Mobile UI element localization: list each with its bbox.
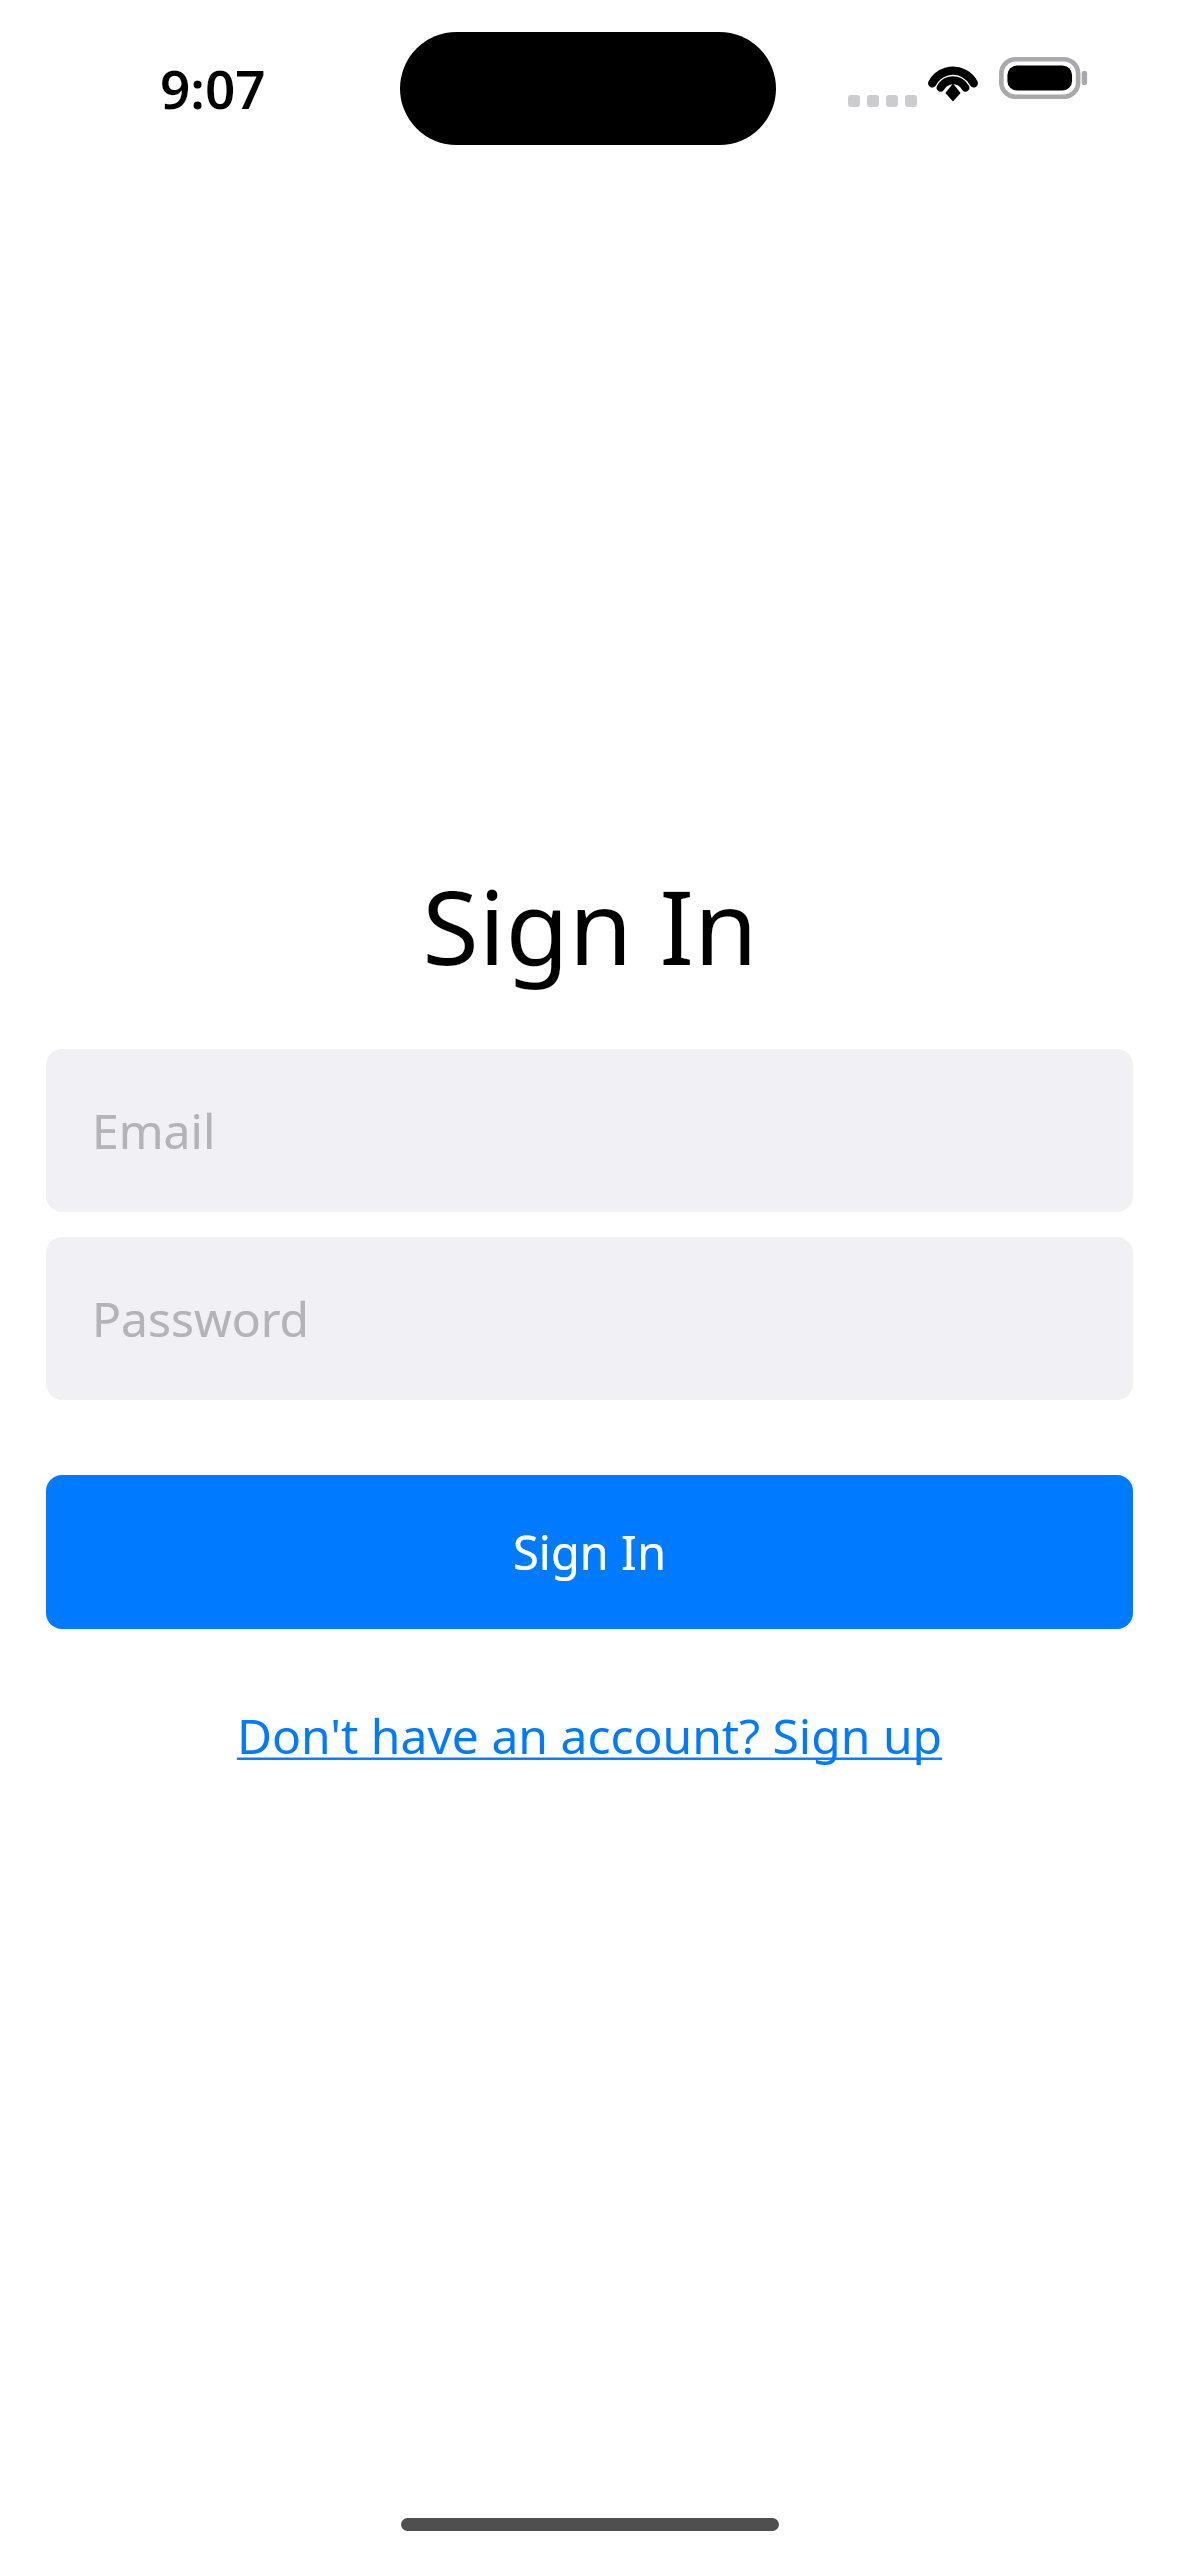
other: Wi-Fi — [928, 57, 978, 97]
button[interactable]: Password — [46, 1237, 1133, 1400]
staticText: Don't have an account? Sign up — [237, 1703, 943, 1768]
staticText: 9:07 — [160, 52, 266, 124]
staticText: Sign In — [513, 1520, 667, 1584]
staticText: Email — [92, 1098, 216, 1163]
staticText: Sign In — [422, 855, 758, 995]
button[interactable]: Don't have an account? Sign up — [207, 1689, 973, 1782]
button[interactable]: Sign In — [46, 1475, 1133, 1629]
other: Battery full — [999, 57, 1089, 99]
staticText: Password — [92, 1286, 310, 1351]
button[interactable]: Email — [46, 1049, 1133, 1212]
